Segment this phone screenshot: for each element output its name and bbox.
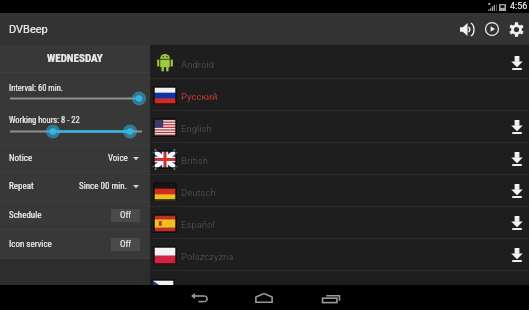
button[interactable]: British xyxy=(150,143,529,174)
staticText: British xyxy=(181,155,209,166)
staticText: Русский xyxy=(181,91,218,102)
button[interactable]: Español xyxy=(150,207,529,238)
button[interactable]: Polszczyzna xyxy=(150,239,529,270)
staticText: Android xyxy=(181,59,215,70)
button[interactable]: Recents xyxy=(313,285,349,310)
staticText: Schedule xyxy=(9,210,42,221)
button[interactable]: Repeat xyxy=(0,172,150,201)
button[interactable]: Settings xyxy=(504,13,529,45)
staticText: DVBeep xyxy=(9,23,48,36)
button[interactable]: English xyxy=(150,111,529,142)
staticText: Icon service xyxy=(9,239,52,250)
button[interactable]: Download xyxy=(507,143,527,174)
staticText: Voice xyxy=(108,153,128,164)
button[interactable]: Home xyxy=(246,285,282,310)
button[interactable]: Download xyxy=(507,47,527,78)
staticText: Off xyxy=(120,210,132,221)
button[interactable]: Download xyxy=(507,111,527,142)
staticText: Deutsch xyxy=(181,187,216,198)
staticText: 4:56 xyxy=(510,1,528,12)
button[interactable]: Volume xyxy=(455,13,479,45)
button[interactable]: Schedule xyxy=(0,202,150,229)
staticText: Working hours: 8 - 22 xyxy=(9,115,80,125)
staticText: WEDNESDAY xyxy=(47,52,103,65)
button[interactable]: Play xyxy=(479,13,504,45)
staticText: Off xyxy=(120,239,132,250)
staticText: Interval: 60 min. xyxy=(9,83,63,93)
staticText: Since 00 min. xyxy=(79,181,128,192)
button[interactable]: Notice xyxy=(0,146,150,171)
button[interactable]: Android xyxy=(150,47,529,78)
button[interactable]: Русский xyxy=(150,79,529,110)
button[interactable]: Deutsch xyxy=(150,175,529,206)
staticText: Repeat xyxy=(9,181,34,192)
staticText: Español xyxy=(181,219,215,230)
staticText: Notice xyxy=(9,153,33,164)
button[interactable]: Download xyxy=(507,239,527,270)
button[interactable]: Icon service xyxy=(0,230,150,258)
button[interactable]: Download xyxy=(507,175,527,206)
staticText: English xyxy=(181,123,212,134)
button[interactable]: Download xyxy=(507,207,527,238)
button[interactable]: Back xyxy=(181,285,217,310)
staticText: Polszczyzna xyxy=(181,251,234,262)
